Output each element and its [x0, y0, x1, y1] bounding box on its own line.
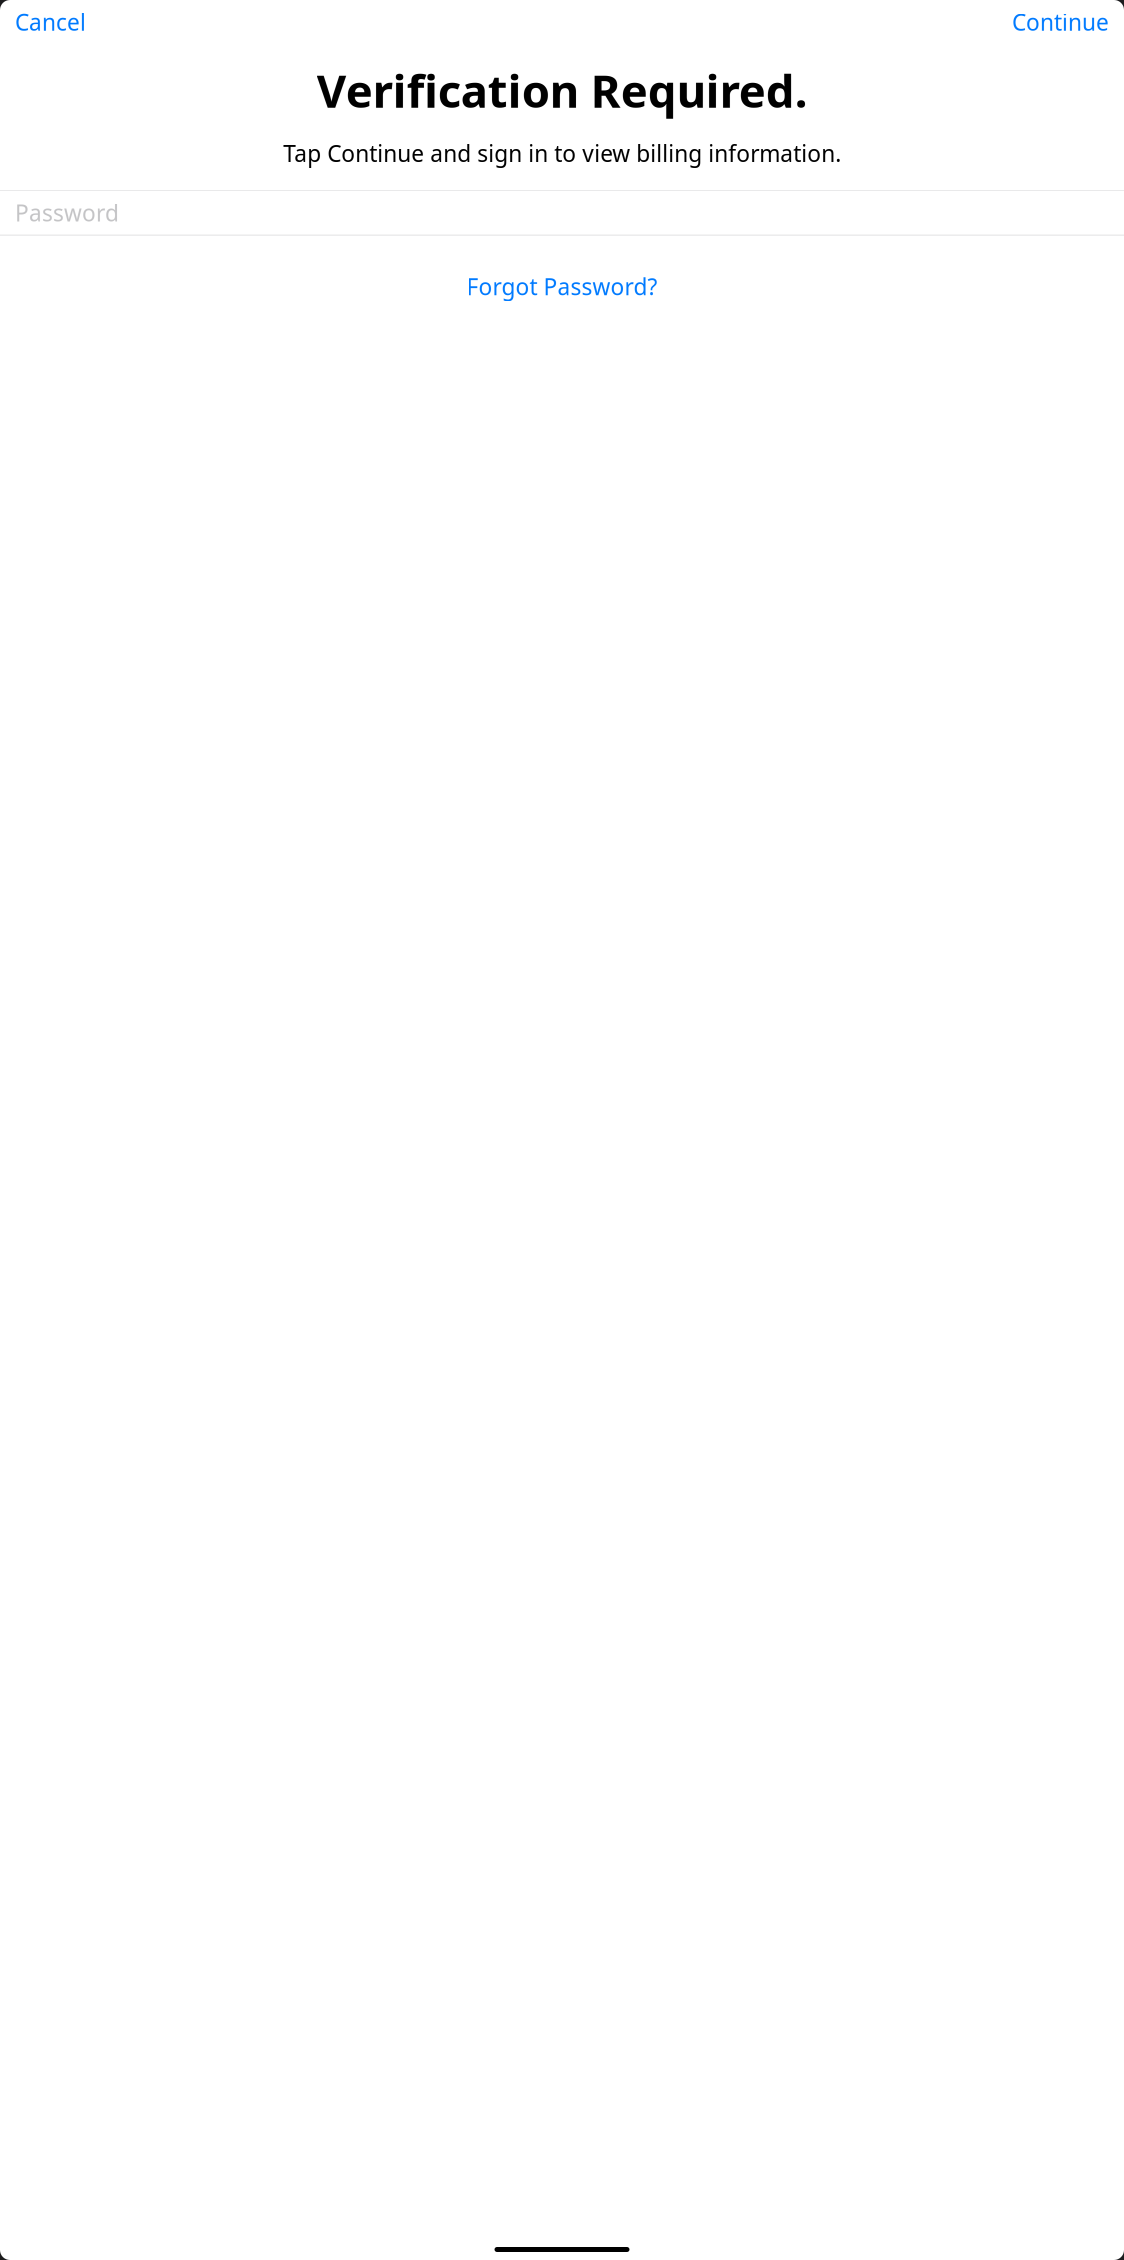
staticText: Tap Continue and sign in to view billing…: [283, 138, 841, 168]
button[interactable]: Forgot Password?: [0, 257, 1124, 315]
staticText: Cancel: [15, 7, 86, 37]
button[interactable]: Cancel: [15, 7, 86, 37]
staticText: Password: [15, 198, 119, 228]
button[interactable]: Continue: [1012, 7, 1109, 37]
button[interactable]: Password: [0, 191, 1124, 235]
staticText: Verification Required.: [316, 60, 807, 120]
staticText: Continue: [1012, 7, 1109, 37]
staticText: Forgot Password?: [466, 271, 657, 301]
